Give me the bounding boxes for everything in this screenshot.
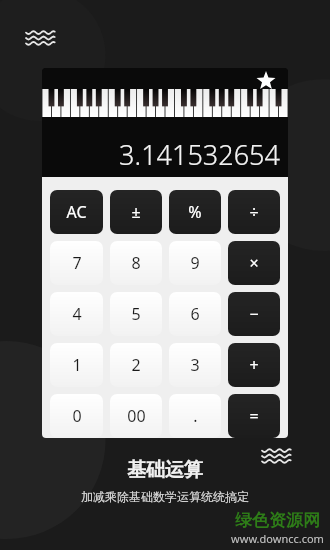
staticText: 8: [131, 252, 141, 274]
button[interactable]: =: [228, 394, 280, 438]
button[interactable]: Favorite: [256, 71, 276, 91]
staticText: =: [249, 405, 259, 427]
staticText: 3.141532654: [119, 136, 280, 173]
button[interactable]: 4: [50, 292, 103, 336]
staticText: AC: [66, 201, 87, 223]
button[interactable]: .: [169, 394, 221, 438]
button[interactable]: 8: [110, 241, 162, 285]
button[interactable]: 0: [50, 394, 103, 438]
button[interactable]: ±: [110, 190, 162, 234]
button[interactable]: 00: [110, 394, 162, 438]
button[interactable]: 2: [110, 343, 162, 387]
staticText: 5: [131, 303, 141, 325]
staticText: .: [193, 405, 198, 427]
staticText: 0: [72, 405, 82, 427]
button[interactable]: %: [169, 190, 221, 234]
staticText: www.downcc.com: [231, 531, 324, 546]
staticText: 1: [72, 354, 82, 376]
button[interactable]: +: [228, 343, 280, 387]
staticText: 绿色资源网: [235, 510, 320, 531]
button[interactable]: 9: [169, 241, 221, 285]
staticText: ÷: [249, 201, 259, 223]
staticText: 9: [190, 252, 200, 274]
staticText: 4: [72, 303, 82, 325]
staticText: 6: [190, 303, 200, 325]
staticText: 3: [190, 354, 200, 376]
staticText: 7: [72, 252, 82, 274]
button[interactable]: ×: [228, 241, 280, 285]
button[interactable]: ÷: [228, 190, 280, 234]
staticText: −: [249, 303, 259, 325]
button[interactable]: 6: [169, 292, 221, 336]
staticText: 加减乘除基础数学运算统统搞定: [81, 489, 249, 504]
button[interactable]: 5: [110, 292, 162, 336]
button[interactable]: 3: [169, 343, 221, 387]
button[interactable]: 1: [50, 343, 103, 387]
button[interactable]: −: [228, 292, 280, 336]
staticText: ±: [131, 201, 141, 223]
button[interactable]: 7: [50, 241, 103, 285]
button[interactable]: AC: [50, 190, 103, 234]
staticText: 基础运算: [127, 458, 203, 482]
staticText: ×: [249, 252, 259, 274]
staticText: 00: [127, 405, 146, 427]
staticText: 2: [131, 354, 141, 376]
staticText: +: [249, 354, 259, 376]
staticText: %: [188, 201, 202, 223]
